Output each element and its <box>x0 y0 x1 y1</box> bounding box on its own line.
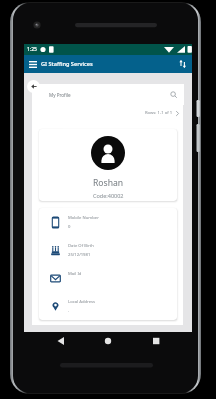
staticText: My Profile <box>49 92 71 98</box>
staticText: 25/12/1981 <box>68 252 91 258</box>
button[interactable]: Mail Id <box>39 264 177 292</box>
staticText: Code:40002 <box>93 192 124 199</box>
button[interactable]: Local Address <box>39 292 177 320</box>
button[interactable]: My Profile <box>32 84 184 105</box>
staticText: Roshan <box>93 177 124 189</box>
staticText: Local Address <box>68 299 96 305</box>
staticText: Mobile Number <box>68 215 99 221</box>
button[interactable]: Back <box>27 80 40 93</box>
staticText: 1:25 <box>27 46 37 53</box>
button[interactable]: Search <box>167 88 180 101</box>
button[interactable]: Mobile Number <box>39 208 177 236</box>
button[interactable]: Sort <box>175 57 189 71</box>
staticText: . <box>68 308 70 314</box>
button[interactable]: Date Of Birth <box>39 236 177 264</box>
button[interactable]: Roshan <box>39 129 177 201</box>
staticText: Mail Id <box>68 271 82 277</box>
staticText: 0 <box>68 224 71 230</box>
button[interactable]: Open navigation drawer <box>26 58 39 71</box>
staticText: GI Staffing Services <box>41 60 93 68</box>
staticText: Date Of Birth <box>68 243 94 249</box>
staticText: Rows: 1-1 of 1 <box>145 110 173 116</box>
